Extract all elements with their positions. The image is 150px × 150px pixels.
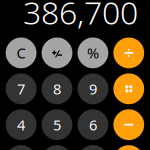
- button[interactable]: 7: [6, 73, 36, 104]
- staticText: 9: [89, 79, 97, 99]
- button[interactable]: Clear: [6, 37, 36, 68]
- button[interactable]: 3: [77, 145, 108, 150]
- staticText: %: [87, 43, 99, 63]
- button[interactable]: 9: [77, 73, 108, 104]
- staticText: 5: [53, 115, 61, 134]
- staticText: 7: [17, 79, 25, 99]
- button[interactable]: Toggle sign: [42, 37, 72, 68]
- button[interactable]: Multiply: [113, 73, 144, 104]
- staticText: 386,700: [23, 0, 138, 33]
- button[interactable]: 2: [42, 145, 72, 150]
- button[interactable]: Subtract: [113, 109, 144, 140]
- button[interactable]: Divide: [113, 37, 144, 68]
- button[interactable]: Add: [113, 145, 144, 150]
- button[interactable]: 1: [6, 145, 36, 150]
- button[interactable]: 6: [77, 109, 108, 140]
- button[interactable]: 8: [42, 73, 72, 104]
- button[interactable]: Percent: [77, 37, 108, 68]
- staticText: C: [17, 43, 26, 63]
- staticText: 6: [89, 115, 97, 134]
- staticText: 4: [17, 115, 25, 134]
- button[interactable]: 4: [6, 109, 36, 140]
- staticText: 8: [53, 79, 61, 99]
- button[interactable]: 5: [42, 109, 72, 140]
